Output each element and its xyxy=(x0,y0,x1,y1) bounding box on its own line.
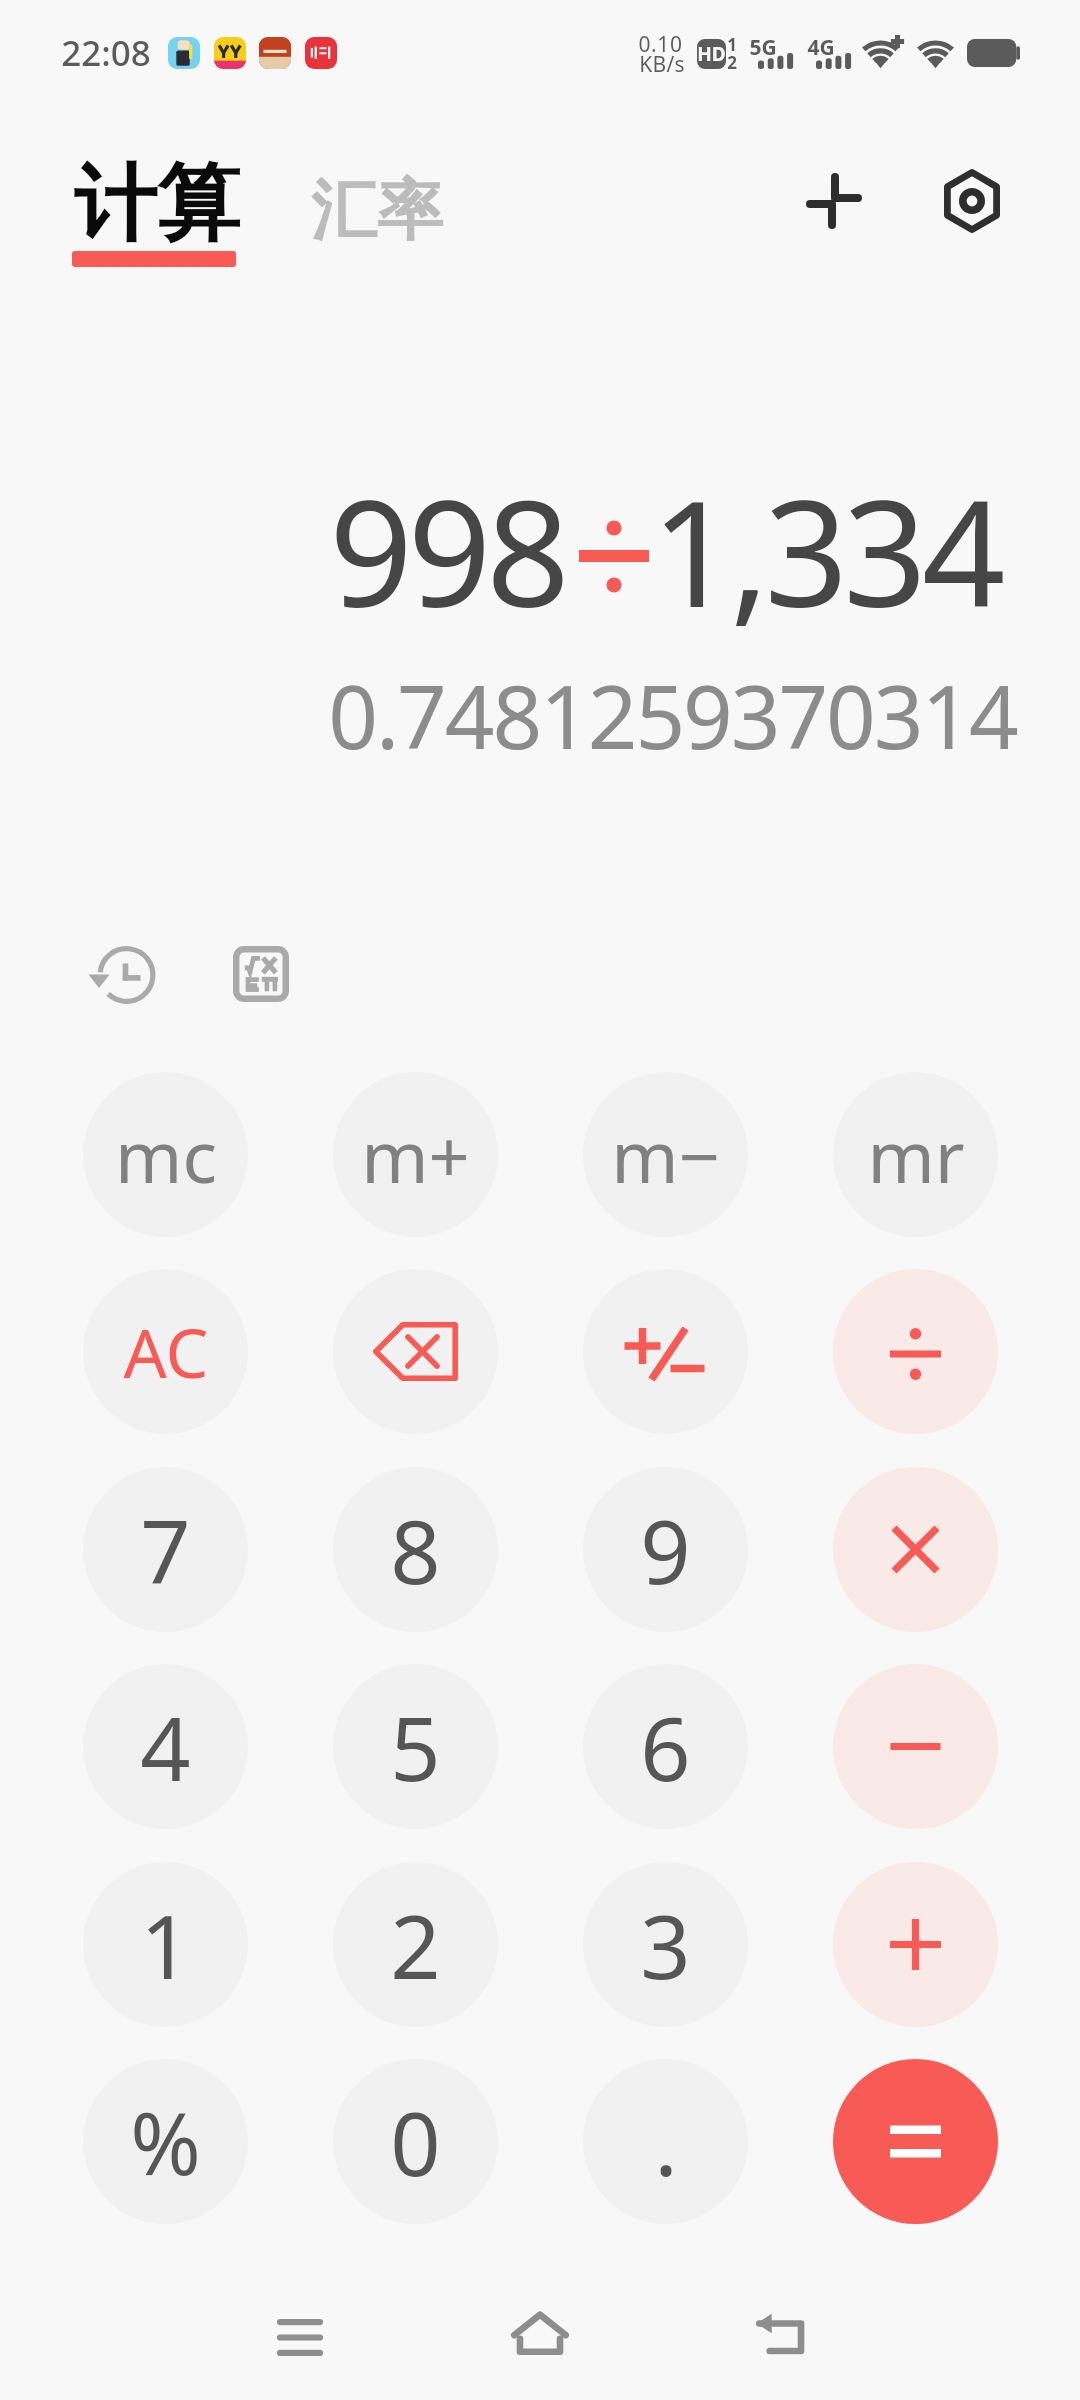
staticText: 2 xyxy=(390,1885,441,2005)
button[interactable]: Minus xyxy=(833,1664,998,1829)
button[interactable]: % xyxy=(83,2059,248,2224)
button[interactable]: 1 xyxy=(83,1862,248,2027)
staticText: 0.7481259370314 xyxy=(328,656,1017,774)
staticText: HD xyxy=(697,41,726,67)
staticText: 22:08 xyxy=(61,29,151,77)
staticText: 6 xyxy=(640,1687,691,1807)
staticText: 1 xyxy=(140,1885,191,2005)
button[interactable]: Home xyxy=(480,2273,600,2393)
staticText: KB/s xyxy=(639,50,685,79)
button[interactable]: Divide xyxy=(833,1269,998,1434)
button[interactable]: Settings xyxy=(917,146,1027,256)
button[interactable]: History xyxy=(76,925,176,1025)
staticText: 3 xyxy=(640,1885,691,2005)
staticText: 5G xyxy=(749,33,777,62)
button[interactable]: Scientific functions xyxy=(211,924,311,1024)
staticText: 8 xyxy=(390,1490,441,1610)
button[interactable]: m+ xyxy=(333,1072,498,1237)
staticText: 4G xyxy=(807,33,835,62)
button[interactable]: 9 xyxy=(583,1467,748,1632)
staticText: mc xyxy=(115,1106,217,1204)
staticText: 7 xyxy=(140,1490,191,1610)
button[interactable]: Multiply xyxy=(833,1467,998,1632)
button[interactable]: mr xyxy=(833,1072,998,1237)
staticText: . xyxy=(654,2082,678,2202)
button[interactable]: mc xyxy=(83,1072,248,1237)
staticText: 0.10 xyxy=(638,30,683,59)
button[interactable]: 6 xyxy=(583,1664,748,1829)
button[interactable]: 计算 xyxy=(56,138,256,286)
button[interactable]: Equals xyxy=(833,2059,998,2224)
button[interactable]: 4 xyxy=(83,1664,248,1829)
button[interactable]: 0 xyxy=(333,2059,498,2224)
button[interactable]: m− xyxy=(583,1072,748,1237)
staticText: mr xyxy=(867,1106,965,1204)
staticText: 0 xyxy=(390,2082,441,2202)
button[interactable]: 5 xyxy=(333,1664,498,1829)
button[interactable]: Back xyxy=(720,2274,840,2394)
button[interactable]: 2 xyxy=(333,1862,498,2027)
button[interactable]: . xyxy=(583,2059,748,2224)
button[interactable]: Backspace xyxy=(333,1269,498,1434)
button[interactable]: Recent apps xyxy=(240,2277,360,2397)
button[interactable]: 3 xyxy=(583,1862,748,2027)
staticText: m+ xyxy=(361,1106,470,1204)
staticText: AC xyxy=(123,1305,209,1398)
staticText: 1,334 xyxy=(651,451,1001,650)
staticText: 计算 xyxy=(74,152,240,257)
button[interactable]: 汇率 xyxy=(293,138,459,258)
staticText: % xyxy=(130,2084,201,2200)
button[interactable]: Expand keypad xyxy=(779,146,889,256)
staticText: 5 xyxy=(390,1687,441,1807)
button[interactable]: 8 xyxy=(333,1467,498,1632)
staticText: 2 xyxy=(727,51,737,74)
staticText: 1 xyxy=(727,33,737,56)
staticText: 汇率 xyxy=(311,169,443,252)
staticText: 4 xyxy=(140,1687,191,1807)
button[interactable]: Plus xyxy=(833,1862,998,2027)
staticText: 9 xyxy=(640,1490,691,1610)
button[interactable]: AC xyxy=(83,1269,248,1434)
staticText: 998 xyxy=(329,451,565,650)
button[interactable]: 7 xyxy=(83,1467,248,1632)
button[interactable]: Toggle sign xyxy=(583,1269,748,1434)
staticText: m− xyxy=(611,1106,720,1204)
